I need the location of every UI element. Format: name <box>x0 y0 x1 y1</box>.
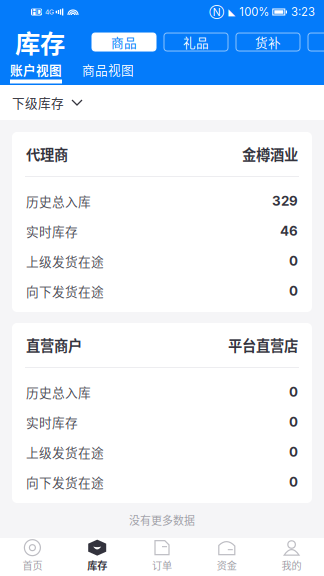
staticText: 资金 <box>217 558 237 572</box>
staticText: 46 <box>280 223 298 239</box>
button[interactable]: 商品 <box>92 33 156 51</box>
button[interactable]: 资金 <box>194 538 259 576</box>
staticText: 商品 <box>111 33 137 51</box>
staticText: 向下发货在途 <box>26 282 104 300</box>
staticText: 直营商户 <box>26 335 82 355</box>
button[interactable]: 我的 <box>259 538 324 576</box>
button[interactable]: 下级库存 <box>0 85 92 120</box>
staticText: 代理商 <box>26 144 68 164</box>
staticText: 下级库存 <box>12 93 64 112</box>
staticText: 实时库存 <box>26 222 78 240</box>
staticText: 0 <box>289 384 298 400</box>
staticText: 329 <box>272 193 298 209</box>
staticText: Ⓝ <box>209 5 224 18</box>
staticText: 0 <box>289 444 298 460</box>
staticText: 0 <box>289 253 298 269</box>
staticText: 账户视图 <box>10 60 62 79</box>
staticText: 上级发货在途 <box>26 443 104 461</box>
staticText: 100% <box>239 5 269 19</box>
staticText: 0 <box>289 283 298 299</box>
staticText: 3:23 <box>291 5 315 19</box>
staticText: 0 <box>289 414 298 430</box>
staticText: 平台直营店 <box>228 335 298 355</box>
staticText: 我的 <box>282 558 302 572</box>
staticText: 历史总入库 <box>26 192 91 210</box>
staticText: ◣ <box>228 7 235 17</box>
staticText: 库存 <box>15 24 65 60</box>
button[interactable]: 货补 <box>236 33 300 51</box>
button[interactable]: 账户视图 <box>10 59 62 83</box>
button[interactable]: 礼品 <box>164 33 228 51</box>
staticText: 没有更多数据 <box>129 512 195 528</box>
staticText: 向下发货在途 <box>26 473 104 491</box>
staticText: 4G <box>45 8 54 16</box>
staticText: 实时库存 <box>26 413 78 431</box>
button[interactable]: 订单 <box>130 538 194 576</box>
staticText: 历史总入库 <box>26 383 91 401</box>
staticText: 礼品 <box>183 33 209 51</box>
staticText: 上级发货在途 <box>26 252 104 270</box>
button[interactable]: 库存 <box>65 538 130 576</box>
staticText: 货补 <box>255 33 281 51</box>
staticText: 0 <box>289 474 298 490</box>
staticText: 首页 <box>22 558 42 572</box>
button[interactable]: 首页 <box>0 538 65 576</box>
staticText: HD <box>31 8 41 16</box>
button[interactable]: 赠 <box>308 33 324 51</box>
staticText: 订单 <box>152 558 172 572</box>
button[interactable]: 商品视图 <box>82 59 134 83</box>
staticText: 金樽酒业 <box>242 144 298 164</box>
staticText: 库存 <box>87 558 107 572</box>
staticText: 商品视图 <box>82 60 134 79</box>
